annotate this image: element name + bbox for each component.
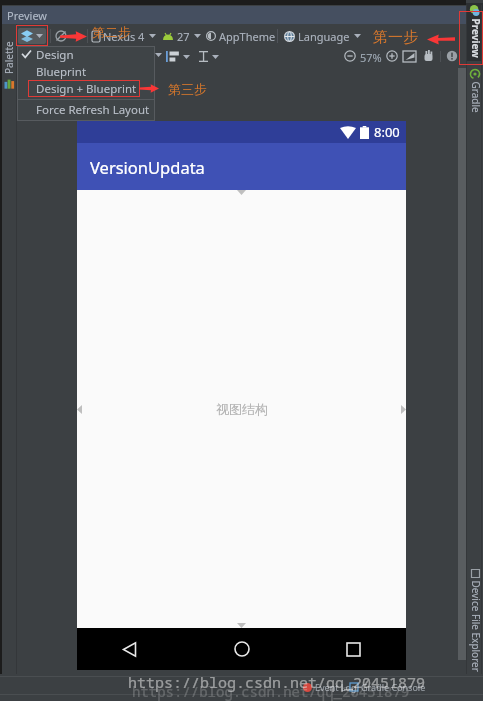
button[interactable]: AppTheme: [206, 28, 276, 44]
button[interactable]: Language: [284, 28, 361, 44]
button[interactable]: Recents: [332, 628, 374, 670]
staticText: Language: [298, 29, 350, 44]
button[interactable]: Gradle: [466, 68, 483, 115]
staticText: Preview: [468, 18, 482, 58]
staticText: Gradle: [468, 81, 482, 113]
staticText: VersionUpdata: [90, 156, 205, 178]
button[interactable]: Align: [166, 49, 190, 64]
staticText: 第二步: [92, 24, 131, 40]
button[interactable]: Warnings: [446, 50, 458, 62]
staticText: Force Refresh Layout: [36, 102, 150, 118]
button[interactable]: Baseline: [199, 49, 219, 64]
staticText: Palette: [2, 41, 16, 74]
button[interactable]: Zoom to fit: [403, 51, 416, 62]
button[interactable]: Preview: [466, 3, 483, 61]
staticText: https://blog.csdn.net/qq_20451879: [132, 682, 410, 701]
staticText: https://blog.csdn.net/qq_20451879: [128, 672, 426, 692]
button[interactable]: Force Refresh Layout: [17, 100, 155, 119]
button[interactable]: Gradle Console: [350, 681, 426, 693]
button[interactable]: Palette: [2, 28, 16, 102]
staticText: 视图结构: [216, 401, 268, 417]
button[interactable]: 27: [163, 28, 201, 44]
staticText: Blueprint: [36, 64, 87, 80]
staticText: 第一步: [373, 28, 418, 47]
staticText: Nexus 4: [103, 29, 145, 44]
button[interactable]: Pan: [423, 50, 434, 61]
staticText: 第三步: [168, 81, 207, 97]
staticText: 57%: [360, 50, 382, 65]
button[interactable]: Surface mode: [18, 28, 46, 44]
staticText: AppTheme: [219, 29, 276, 44]
button[interactable]: Event Log: [303, 681, 357, 693]
staticText: Design + Blueprint: [36, 81, 137, 97]
staticText: Gradle Console: [361, 681, 426, 693]
button[interactable]: Design: [17, 46, 155, 63]
button[interactable]: Device File Explorer: [466, 569, 483, 673]
button[interactable]: Toggle render: [55, 30, 67, 42]
staticText: Preview: [7, 8, 48, 23]
button[interactable]: Nexus 4: [92, 28, 156, 44]
staticText: 27: [177, 29, 190, 44]
button[interactable]: Blueprint: [17, 63, 155, 80]
button[interactable]: Zoom in: [386, 50, 398, 62]
button[interactable]: Back: [108, 628, 150, 670]
button[interactable]: Zoom out: [344, 50, 356, 62]
staticText: 8:00: [374, 123, 400, 141]
button[interactable]: Design + Blueprint: [17, 80, 155, 97]
button[interactable]: Home: [221, 628, 263, 670]
button[interactable]: More: [155, 53, 162, 57]
staticText: Device File Explorer: [468, 580, 482, 672]
staticText: Design: [36, 47, 74, 63]
staticText: Event Log: [315, 681, 357, 693]
